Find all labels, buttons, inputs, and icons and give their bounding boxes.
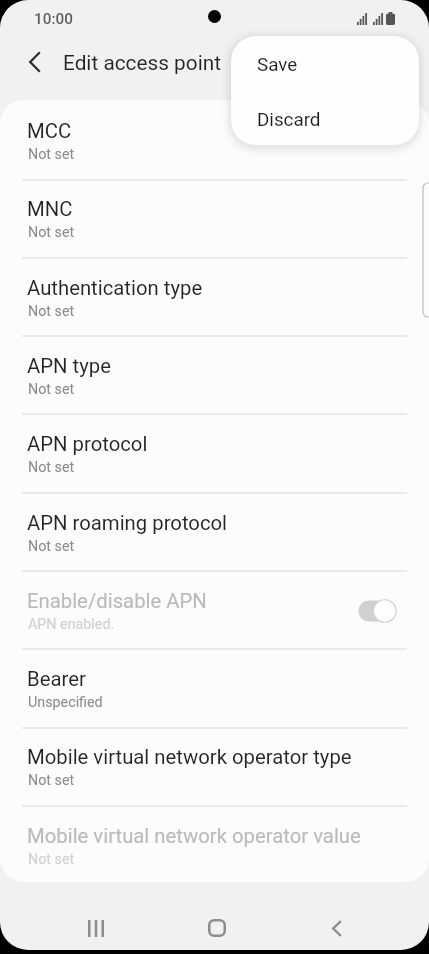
staticText: Authentication type [27, 276, 203, 300]
button[interactable]: APN roaming protocol [0, 492, 429, 570]
button[interactable]: APN type [0, 335, 429, 413]
staticText: Edit access point [63, 51, 221, 75]
button[interactable]: Recent apps [66, 898, 126, 950]
staticText: Not set [28, 772, 75, 789]
staticText: MCC [27, 119, 72, 143]
staticText: Unspecified [28, 694, 103, 711]
button[interactable]: Bearer [0, 648, 429, 726]
button[interactable]: MCC [0, 100, 429, 178]
button[interactable]: Mobile virtual network operator type [0, 726, 429, 804]
button[interactable]: Navigate up [13, 40, 56, 83]
staticText: Bearer [27, 667, 86, 691]
staticText: Enable/disable APN [27, 589, 207, 613]
button[interactable]: Enable/disable APN [0, 570, 429, 648]
staticText: APN roaming protocol [27, 511, 228, 535]
button[interactable]: Save [231, 36, 419, 91]
button[interactable]: Authentication type [0, 257, 429, 335]
staticText: Discard [257, 109, 321, 131]
staticText: APN protocol [27, 432, 148, 456]
staticText: Not set [28, 224, 75, 241]
button[interactable]: Home [187, 898, 247, 950]
staticText: 10:00 [34, 10, 73, 28]
staticText: Not set [28, 538, 75, 555]
button[interactable]: Mobile virtual network operator value [0, 805, 429, 882]
staticText: MNC [27, 197, 73, 221]
staticText: APN type [27, 354, 111, 378]
staticText: Save [257, 54, 298, 76]
staticText: Not set [28, 381, 75, 398]
button[interactable]: Discard [231, 91, 419, 145]
staticText: Not set [28, 303, 75, 320]
button[interactable]: APN protocol [0, 413, 429, 491]
staticText: Mobile virtual network operator type [27, 745, 352, 769]
staticText: APN enabled. [28, 616, 115, 633]
staticText: Not set [28, 851, 75, 868]
staticText: Not set [28, 459, 75, 476]
staticText: Not set [28, 146, 75, 163]
button[interactable]: MNC [0, 178, 429, 256]
staticText: Mobile virtual network operator value [27, 824, 361, 848]
button[interactable]: Back [307, 898, 367, 950]
